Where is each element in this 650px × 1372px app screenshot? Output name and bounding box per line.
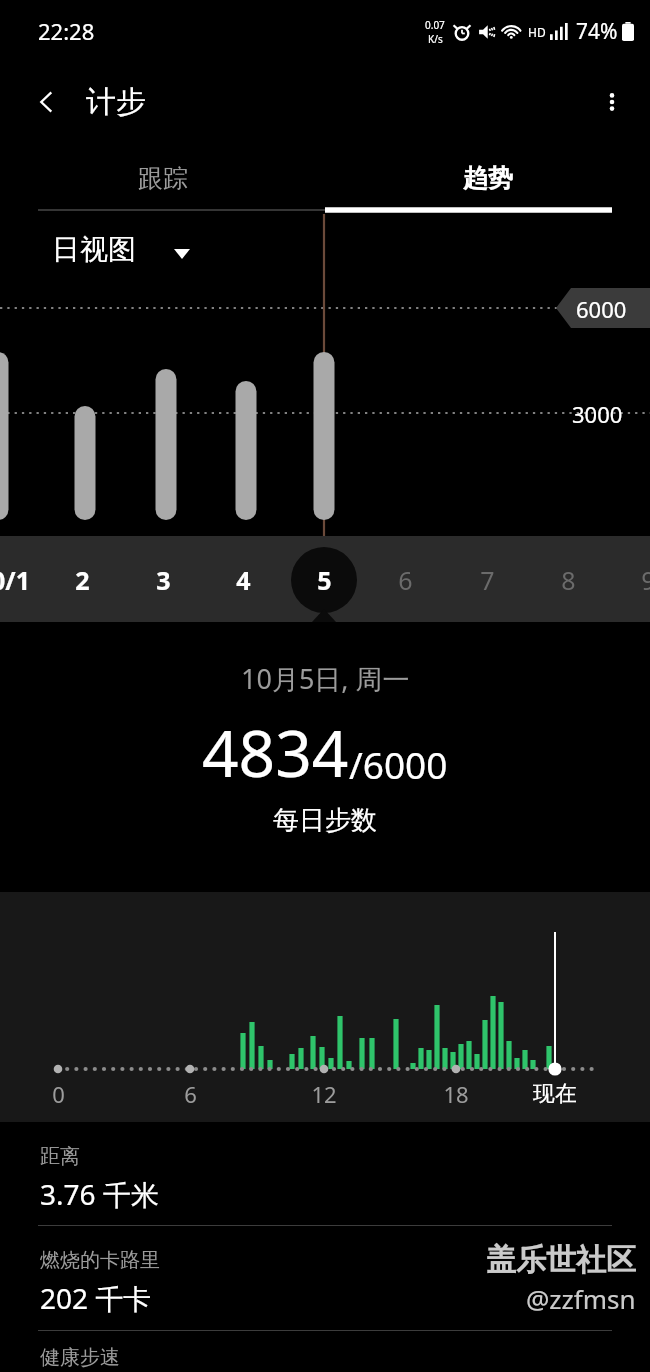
staticText: 盖乐世社区 bbox=[486, 1241, 636, 1279]
staticText: 10月5日, 周一 bbox=[241, 660, 410, 697]
staticText: HD bbox=[528, 24, 546, 40]
staticText: 0/1 bbox=[0, 563, 30, 597]
button[interactable]: Back bbox=[22, 77, 72, 127]
staticText: 4 bbox=[236, 563, 251, 597]
staticText: 6000 bbox=[576, 294, 627, 324]
staticText: 5 bbox=[317, 563, 332, 597]
button[interactable]: More options bbox=[586, 76, 638, 128]
button[interactable]: 7 bbox=[455, 549, 519, 611]
staticText: 6 bbox=[398, 563, 413, 597]
staticText: 跟踪 bbox=[138, 163, 188, 194]
staticText: 7 bbox=[480, 563, 495, 597]
button[interactable]: 5 bbox=[292, 549, 356, 611]
staticText: 18 bbox=[443, 1079, 469, 1109]
staticText: 12 bbox=[311, 1079, 337, 1109]
button[interactable]: Change period bbox=[164, 236, 200, 272]
staticText: 3 bbox=[156, 563, 171, 597]
button[interactable]: 4 bbox=[211, 549, 275, 611]
button[interactable]: 跟踪 bbox=[0, 142, 325, 214]
staticText: 202 千卡 bbox=[40, 1279, 152, 1317]
staticText: 距离 bbox=[40, 1144, 80, 1169]
staticText: 8 bbox=[561, 563, 576, 597]
staticText: 每日步数 bbox=[273, 804, 377, 837]
button[interactable]: 燃烧的卡路里 bbox=[0, 1226, 650, 1330]
button[interactable]: 趋势 bbox=[325, 142, 650, 214]
button[interactable]: 6 bbox=[373, 549, 437, 611]
staticText: 6 bbox=[184, 1079, 197, 1109]
staticText: 9 bbox=[641, 563, 650, 597]
staticText: 0.07 bbox=[425, 18, 445, 32]
button[interactable]: 9 bbox=[616, 549, 650, 611]
staticText: 2 bbox=[75, 563, 90, 597]
staticText: 健康步速 bbox=[40, 1345, 120, 1370]
button[interactable]: 健康步速 bbox=[0, 1331, 650, 1372]
staticText: 趋势 bbox=[463, 163, 513, 194]
button[interactable]: 0/1 bbox=[0, 549, 42, 611]
staticText: @zzfmsn bbox=[526, 1281, 636, 1316]
staticText: 3000 bbox=[572, 399, 623, 429]
staticText: 燃烧的卡路里 bbox=[40, 1248, 160, 1273]
button[interactable]: 3 bbox=[131, 549, 195, 611]
button[interactable]: 2 bbox=[50, 549, 114, 611]
staticText: 22:28 bbox=[38, 16, 95, 46]
staticText: 现在 bbox=[533, 1080, 577, 1108]
staticText: K/s bbox=[428, 32, 443, 46]
button[interactable]: 8 bbox=[536, 549, 600, 611]
button[interactable]: 距离 bbox=[0, 1122, 650, 1225]
staticText: 74% bbox=[576, 17, 618, 46]
staticText: /6000 bbox=[349, 739, 448, 789]
staticText: 日视图 bbox=[52, 232, 136, 267]
staticText: 4834 bbox=[202, 709, 349, 796]
staticText: 3.76 千米 bbox=[40, 1175, 159, 1213]
staticText: 0 bbox=[52, 1079, 65, 1109]
staticText: 计步 bbox=[86, 83, 146, 121]
